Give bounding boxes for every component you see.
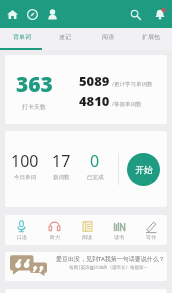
button[interactable]: Explore bbox=[22, 2, 42, 26]
staticText: 开始 bbox=[135, 164, 153, 175]
staticText: 0 bbox=[90, 150, 100, 172]
staticText: 5089 bbox=[79, 72, 110, 90]
staticText: 背单词 bbox=[13, 33, 31, 41]
button[interactable]: Search bbox=[125, 2, 145, 26]
button[interactable]: 开始 bbox=[127, 153, 160, 186]
button[interactable]: 写作 bbox=[135, 215, 167, 245]
staticText: 363 bbox=[16, 70, 53, 99]
staticText: 已完成 bbox=[87, 174, 104, 181]
button[interactable]: 速记 bbox=[43, 28, 86, 50]
staticText: 今日单词 bbox=[14, 174, 36, 181]
staticText: 听力 bbox=[50, 234, 60, 240]
staticText: 速记 bbox=[59, 33, 71, 41]
button[interactable]: 口语 bbox=[5, 215, 38, 245]
button[interactable]: 读书 bbox=[103, 215, 135, 245]
staticText: 扩展包 bbox=[142, 33, 160, 41]
button[interactable]: 阅读 bbox=[71, 215, 103, 245]
staticText: 17 bbox=[52, 150, 71, 172]
button[interactable]: Profile bbox=[42, 2, 62, 26]
staticText: 打卡天数 bbox=[22, 103, 46, 111]
staticText: 4810 bbox=[79, 92, 110, 110]
staticText: 100 bbox=[11, 150, 39, 172]
staticText: 口语 bbox=[17, 234, 27, 240]
staticText: /掌握单词数 bbox=[112, 100, 142, 108]
button[interactable]: Notifications bbox=[150, 2, 170, 26]
button[interactable]: 背单词 bbox=[0, 28, 43, 50]
staticText: 写作 bbox=[146, 234, 156, 240]
button[interactable]: 阅读 bbox=[86, 28, 129, 50]
button[interactable]: 听力 bbox=[38, 215, 71, 245]
staticText: 读书 bbox=[114, 234, 124, 240]
staticText: 阅读 bbox=[82, 234, 92, 240]
staticText: 阅读 bbox=[102, 33, 114, 41]
staticText: 新词数 bbox=[53, 174, 70, 181]
button[interactable]: Home bbox=[2, 2, 22, 26]
button[interactable]: 扩展包 bbox=[129, 28, 172, 50]
staticText: /累计学习单词数 bbox=[112, 80, 153, 88]
staticText: 爱豆出没，见到TA我第一句话要说什么？ bbox=[56, 255, 165, 263]
staticText: 每周|英语趣玩地的《漂亮女》每期第··· bbox=[69, 264, 148, 270]
